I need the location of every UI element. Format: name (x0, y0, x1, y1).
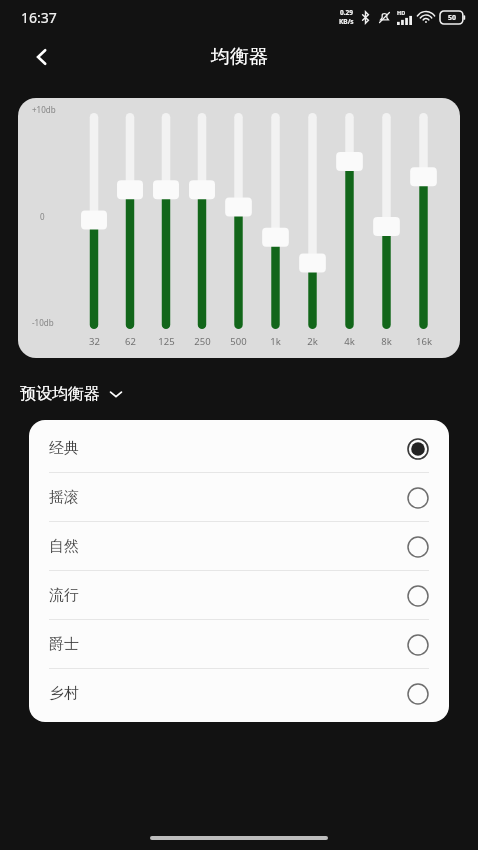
staticText: 均衡器 (211, 45, 268, 69)
staticText: 经典 (49, 439, 79, 458)
staticText: 16k (416, 335, 432, 348)
button[interactable]: 2k (294, 111, 331, 348)
staticText: 预设均衡器 (20, 384, 100, 404)
staticText: 125 (158, 335, 175, 348)
staticText: 自然 (49, 537, 79, 556)
staticText: 1k (270, 335, 281, 348)
staticText: -10db (32, 317, 54, 328)
staticText: 乡村 (49, 684, 79, 703)
staticText: 62 (125, 335, 136, 348)
staticText: 8k (381, 335, 392, 348)
staticText: 500 (230, 335, 247, 348)
staticText: 摇滚 (49, 488, 79, 507)
staticText: 32 (89, 335, 100, 348)
staticText: +10db (32, 104, 56, 115)
button[interactable]: 125 (148, 111, 184, 348)
button[interactable]: 流行 (29, 571, 449, 620)
staticText: 4k (344, 335, 355, 348)
button[interactable]: 500 (220, 111, 257, 348)
button[interactable]: 62 (112, 111, 148, 348)
staticText: KB/s (339, 17, 354, 26)
button[interactable]: Back (20, 35, 64, 79)
button[interactable]: 摇滚 (29, 473, 449, 522)
button[interactable]: 32 (76, 111, 112, 348)
staticText: 爵士 (49, 635, 79, 654)
button[interactable]: 16k (405, 111, 442, 348)
staticText: 0 (40, 211, 45, 222)
button[interactable]: 经典 (29, 424, 449, 473)
staticText: 250 (194, 335, 211, 348)
button[interactable]: 自然 (29, 522, 449, 571)
button[interactable]: 4k (331, 111, 368, 348)
staticText: 2k (307, 335, 318, 348)
staticText: 流行 (49, 586, 79, 605)
staticText: 16:37 (21, 8, 57, 27)
button[interactable]: 爵士 (29, 620, 449, 669)
button[interactable]: 乡村 (29, 669, 449, 718)
button[interactable]: 1k (257, 111, 294, 348)
button[interactable]: 250 (184, 111, 220, 348)
staticText: 0.29 (340, 8, 353, 17)
staticText: 50 (448, 13, 457, 23)
button[interactable]: 8k (368, 111, 405, 348)
staticText: HD (397, 9, 406, 16)
button[interactable]: 预设均衡器 (20, 384, 124, 404)
